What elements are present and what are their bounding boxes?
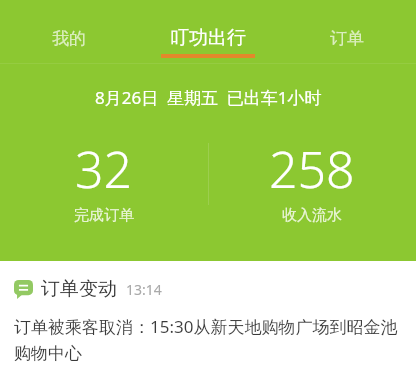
button[interactable]: 我的 [0, 13, 138, 63]
button[interactable]: 叮功出行 [138, 13, 277, 63]
staticText: 收入流水 [282, 206, 342, 225]
button[interactable]: 258 [208, 135, 416, 225]
staticText: 叮功出行 [170, 26, 246, 50]
staticText: 完成订单 [74, 206, 134, 225]
staticText: 32 [75, 135, 133, 203]
staticText: 258 [269, 135, 355, 203]
staticText: 订单 [330, 28, 364, 49]
staticText: 我的 [52, 28, 86, 49]
staticText: 订单变动 [41, 277, 117, 301]
staticText: 订单被乘客取消：15:30从新天地购物广场到昭金池购物中心 [14, 315, 406, 364]
staticText: 13:14 [126, 280, 162, 299]
button[interactable]: 32 [0, 135, 208, 225]
button[interactable]: 订单变动 [0, 261, 416, 365]
staticText: 8月26日 星期五 已出车1小时 [95, 86, 322, 109]
button[interactable]: 订单 [277, 13, 416, 63]
other: 订单变动 [14, 280, 33, 299]
